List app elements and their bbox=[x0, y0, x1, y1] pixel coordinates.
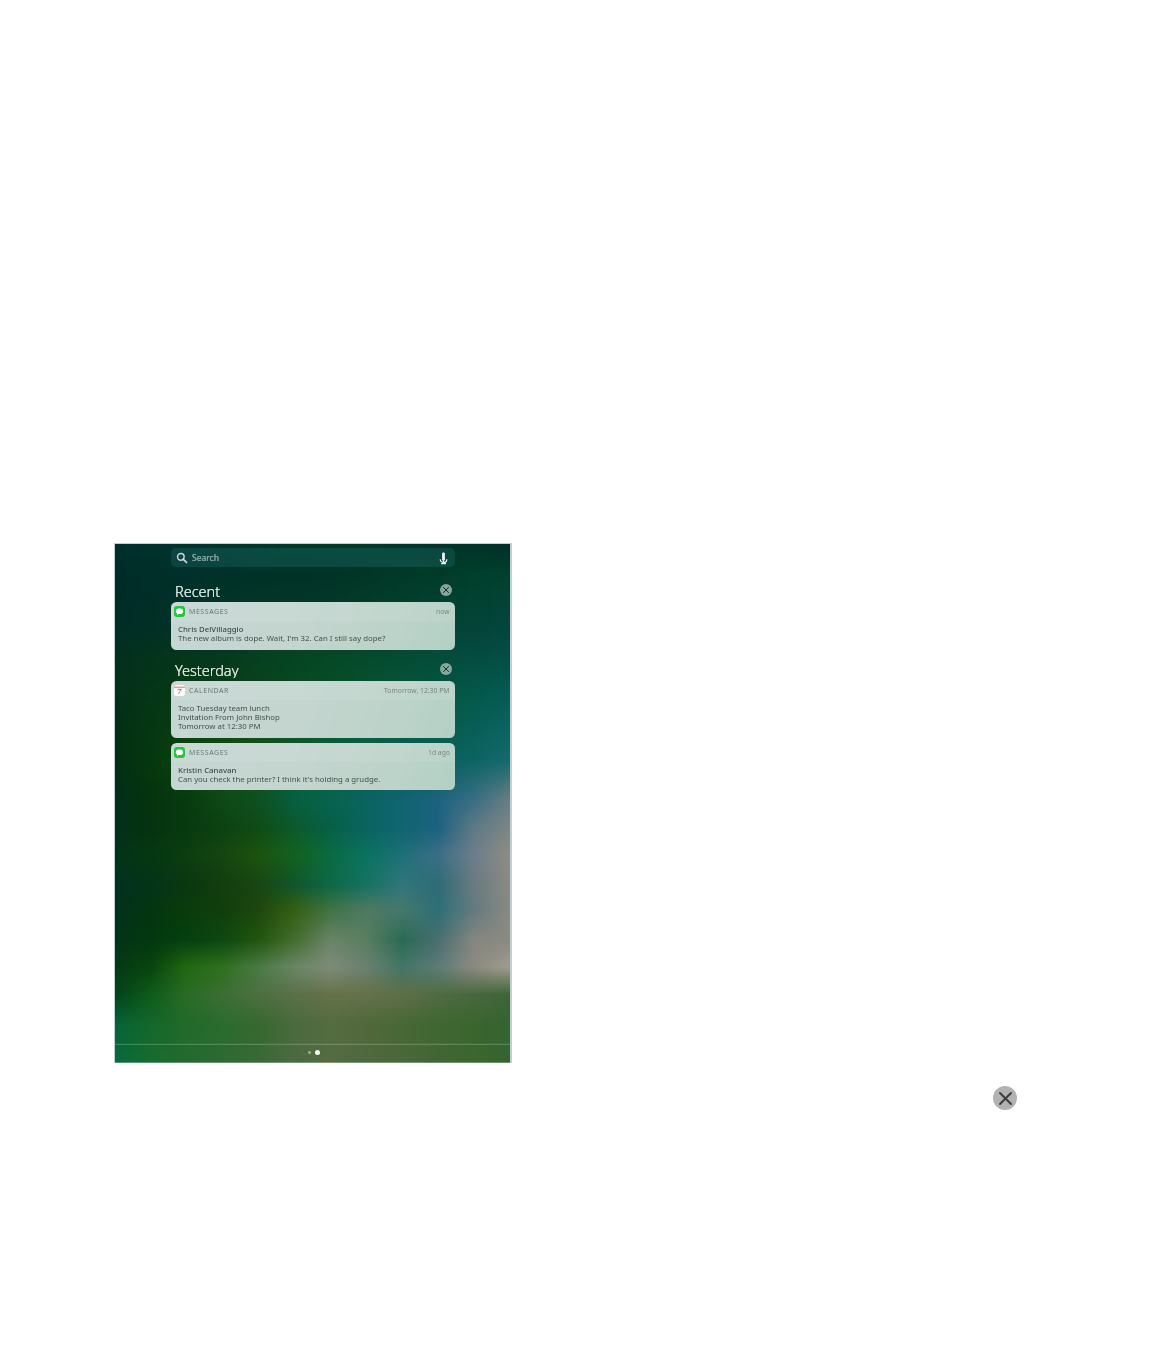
staticText: MESSAGES bbox=[189, 748, 229, 758]
staticText: Taco Tuesday team lunch bbox=[178, 703, 270, 714]
button[interactable]: Voice search bbox=[436, 551, 450, 565]
button[interactable]: Close bbox=[993, 1086, 1017, 1110]
staticText: MESSAGES bbox=[189, 607, 229, 617]
staticText: Kristin Canavan bbox=[178, 765, 237, 776]
staticText: Search bbox=[192, 552, 219, 564]
button[interactable]: Search bbox=[171, 548, 455, 567]
staticText: CALENDAR bbox=[189, 686, 229, 696]
button[interactable]: MESSAGES bbox=[171, 602, 455, 650]
staticText: Recent bbox=[175, 581, 221, 599]
button[interactable]: Clear recent notifications bbox=[440, 584, 452, 596]
button[interactable]: Clear yesterday notifications bbox=[440, 663, 452, 675]
button[interactable]: MESSAGES bbox=[171, 743, 455, 790]
staticText: Invitation From John Bishop bbox=[178, 712, 280, 723]
button[interactable]: CALENDAR bbox=[171, 681, 455, 738]
staticText: Can you check the printer? I think it's … bbox=[178, 774, 381, 785]
staticText: 1d ago bbox=[428, 748, 450, 757]
staticText: Yesterday bbox=[175, 660, 239, 678]
staticText: Tomorrow, 12:30 PM bbox=[384, 686, 450, 695]
staticText: now bbox=[436, 607, 450, 616]
staticText: The new album is dope. Wait, I'm 32. Can… bbox=[178, 633, 386, 644]
staticText: Tomorrow at 12:30 PM bbox=[178, 721, 261, 732]
staticText: Chris DelVillaggio bbox=[178, 624, 244, 635]
